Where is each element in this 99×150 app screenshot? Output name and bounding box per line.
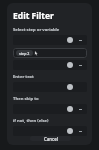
staticText: Enter text — [13, 74, 34, 80]
button[interactable]: Enter text — [13, 82, 87, 92]
button[interactable]: Open menu — [67, 84, 73, 90]
button[interactable]: Value field — [13, 48, 87, 58]
button[interactable]: Open menu — [67, 37, 73, 43]
staticText: if not, then (else) — [13, 118, 49, 124]
button[interactable]: Operator — [13, 60, 87, 70]
staticText: step 2 — [19, 51, 30, 56]
staticText: Select step or variable — [13, 27, 60, 33]
button[interactable]: Open menu — [67, 128, 73, 134]
button[interactable]: Remove — [77, 106, 84, 112]
button[interactable]: If not then else — [13, 126, 87, 136]
button[interactable]: Select step or variable — [13, 35, 87, 45]
button[interactable]: Open menu — [67, 62, 73, 68]
staticText: Edit Filter — [13, 10, 54, 22]
button[interactable]: Remove — [77, 62, 84, 68]
button[interactable]: Remove — [77, 128, 84, 134]
staticText: Cancel — [44, 136, 58, 141]
button[interactable]: Remove — [77, 37, 84, 43]
staticText: Then skip to — [13, 96, 39, 102]
button[interactable]: Cancel — [30, 136, 71, 141]
button[interactable]: Then skip to — [13, 104, 87, 114]
button[interactable]: Open menu — [67, 106, 73, 112]
